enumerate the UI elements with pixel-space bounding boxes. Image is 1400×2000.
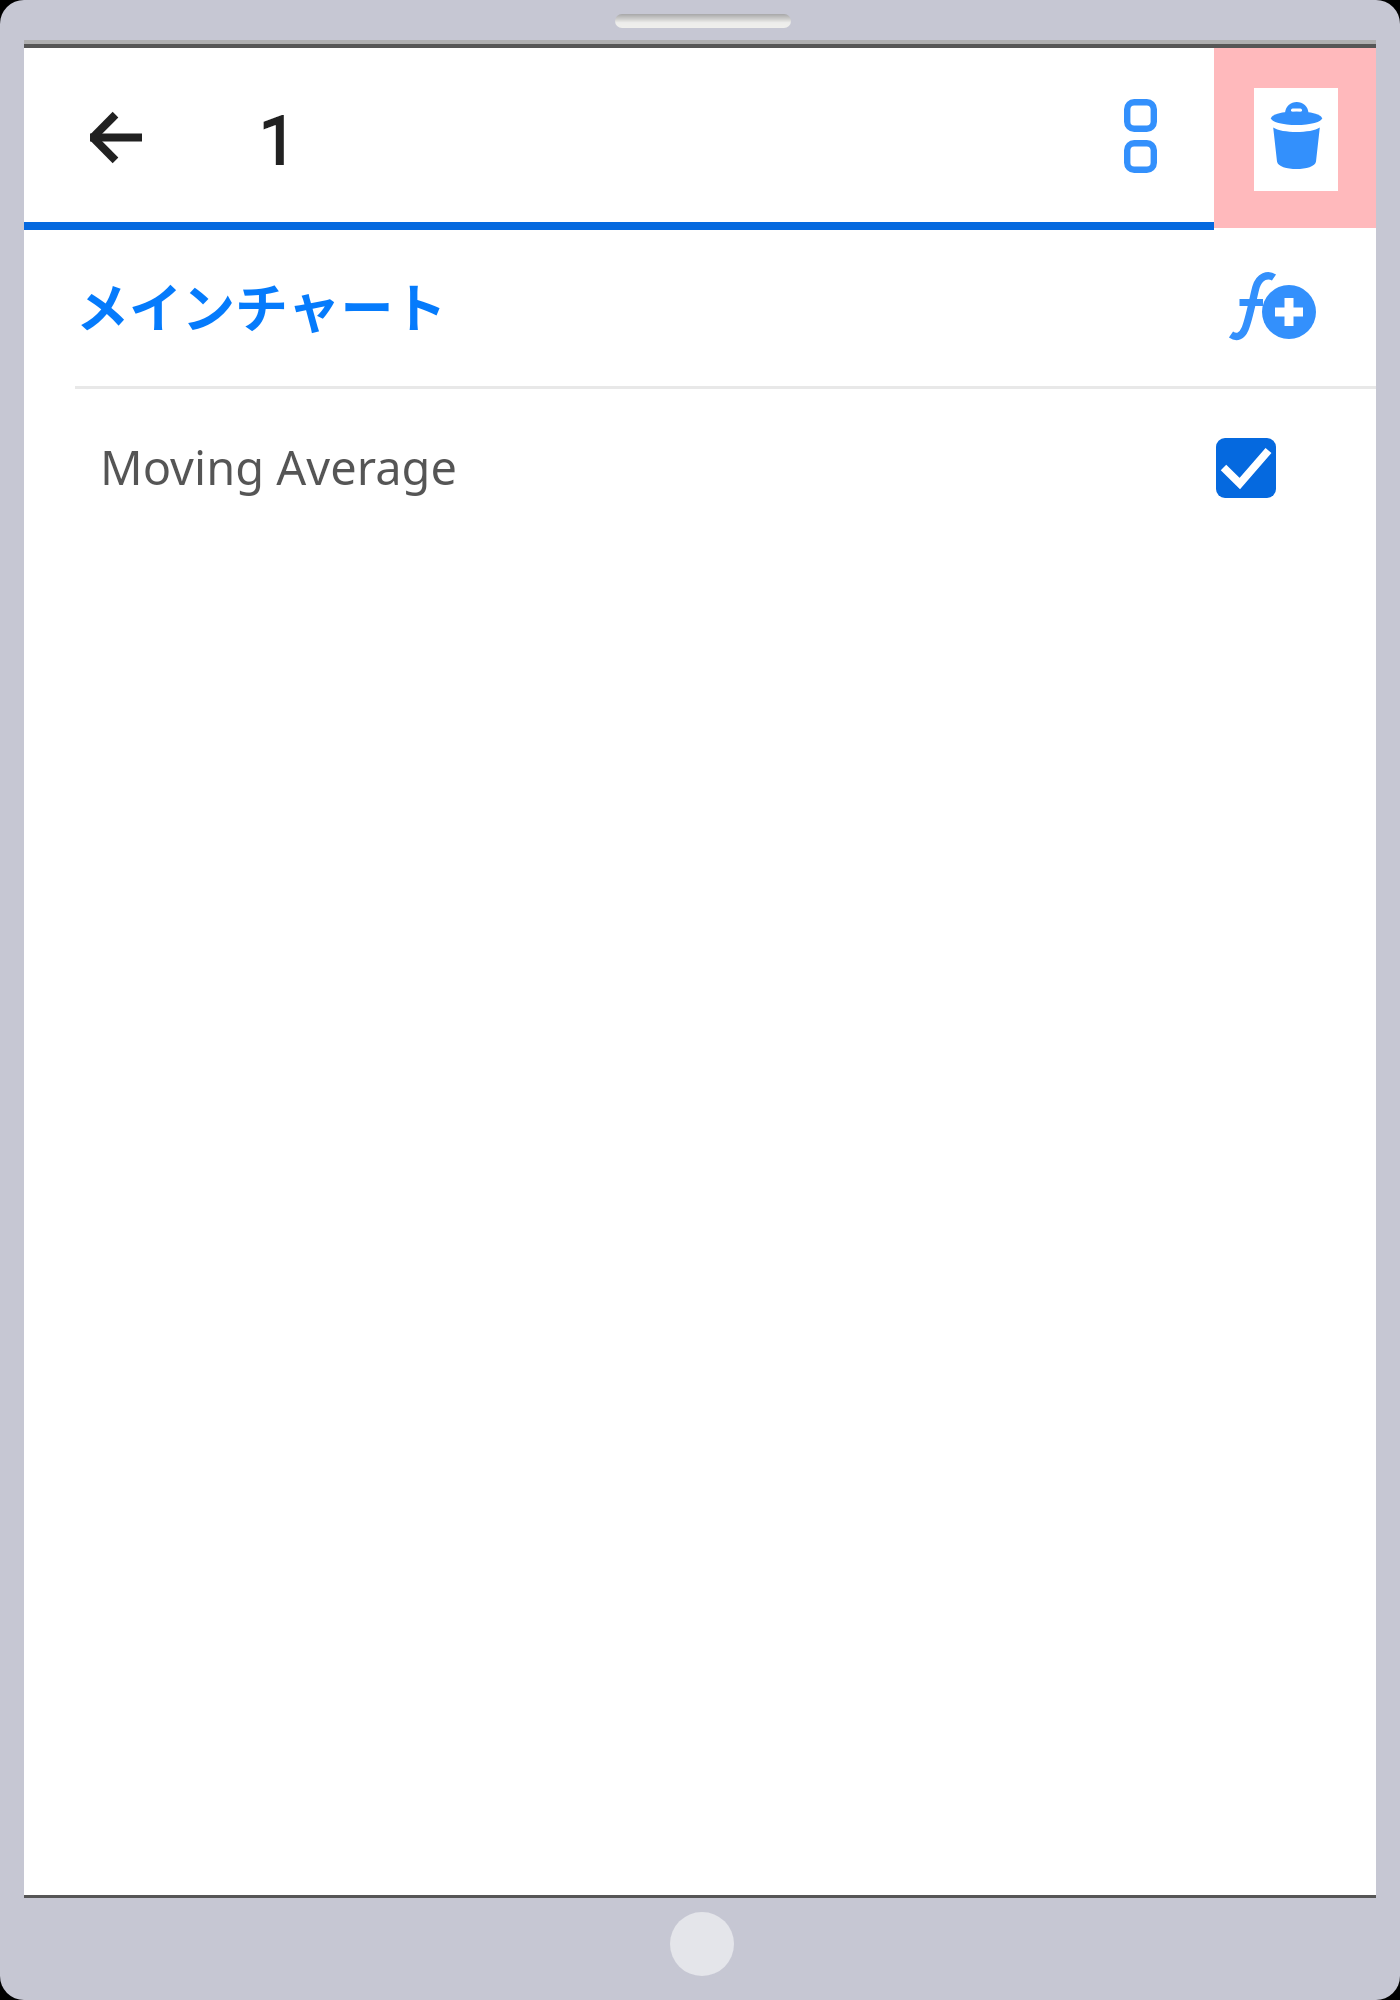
button[interactable]: Moving Average: [24, 389, 1376, 549]
button[interactable]: Layout: [1092, 88, 1189, 184]
button[interactable]: Add indicator: [1218, 262, 1330, 362]
button[interactable]: Delete: [1214, 48, 1376, 228]
staticText: Moving Average: [100, 435, 457, 499]
staticText: 1: [259, 102, 297, 181]
button[interactable]: Back: [67, 89, 163, 185]
staticText: メインチャート: [76, 267, 447, 344]
